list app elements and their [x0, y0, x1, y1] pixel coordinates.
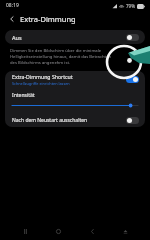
- staticText: Extra-Dimmung Shortcut: [12, 73, 73, 80]
- button[interactable]: Extra-Dimmung Shortcut: [5, 71, 145, 88]
- button[interactable]: Toggle off: [126, 117, 139, 124]
- button[interactable]: Home: [50, 223, 66, 239]
- button[interactable]: Toggle on: [126, 76, 139, 83]
- staticText: Dimmen Sie den Bildschirm über die minim…: [10, 48, 140, 60]
- staticText: 08:19: [6, 2, 19, 9]
- button[interactable]: Back: [6, 13, 17, 24]
- staticText: 79%: [126, 3, 135, 9]
- staticText: Intensität: [12, 92, 35, 99]
- button[interactable]: Aus: [5, 30, 145, 44]
- button[interactable]: Intensity slider: [12, 103, 138, 108]
- staticText: Aus: [12, 34, 22, 41]
- staticText: Extra-Dimmung: [20, 14, 76, 24]
- staticText: Nach dem Neustart ausschalten: [12, 117, 88, 124]
- button[interactable]: Toggle off: [126, 34, 139, 41]
- staticText: des Bildschirms angenehm ist.: [10, 60, 71, 66]
- button[interactable]: Hide keyboard: [117, 223, 133, 239]
- button[interactable]: Intensität: [12, 92, 138, 110]
- button[interactable]: Nach dem Neustart ausschalten: [5, 114, 145, 127]
- button[interactable]: Back: [84, 223, 100, 239]
- button[interactable]: Recents: [17, 223, 33, 239]
- staticText: Schnellzugriffe einrichten lassen: [12, 81, 70, 86]
